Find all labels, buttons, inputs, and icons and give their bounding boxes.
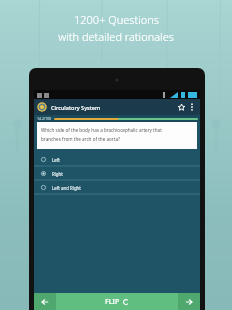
button[interactable]: Right [34,167,200,181]
staticText: Which side of the body has a brachioceph… [41,127,162,133]
button[interactable]: Up [37,102,47,112]
staticText: FLIP [105,297,120,307]
staticText: 1200+ Questions [74,12,159,27]
staticText: Circulatory System [51,104,101,111]
staticText: Left and Right [52,185,81,191]
staticText: Right [52,171,63,177]
staticText: Left [52,157,60,163]
button[interactable]: Which side of the body has a brachioceph… [37,122,197,149]
staticText: branches from the arch of the aorta? [41,136,120,142]
button[interactable]: Favorite [175,101,187,113]
staticText: with detailed rationales [58,29,174,44]
button[interactable]: Next [178,293,200,310]
button[interactable]: More options [187,102,197,112]
button[interactable]: Previous [34,293,56,310]
staticText: 14.2/100 [37,116,52,121]
button[interactable]: FLIP [56,293,178,310]
button[interactable]: Left and Right [34,181,200,195]
button[interactable]: Left [34,153,200,167]
